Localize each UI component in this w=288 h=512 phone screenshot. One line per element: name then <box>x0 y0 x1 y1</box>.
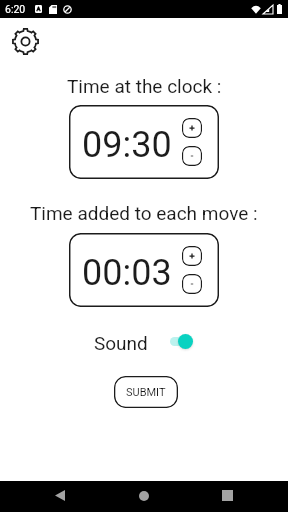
button[interactable]: Decrease <box>182 146 202 166</box>
button[interactable]: Settings <box>8 24 42 58</box>
button[interactable]: Time added to each move <box>69 233 219 307</box>
staticText: Time added to each move : <box>30 202 258 224</box>
staticText: SUBMIT <box>126 386 166 399</box>
button[interactable]: Back <box>44 480 76 511</box>
button[interactable]: Increase <box>182 246 202 266</box>
button[interactable]: Decrease <box>182 274 202 294</box>
button[interactable]: Sound on <box>170 334 193 349</box>
staticText: Time at the clock : <box>67 75 222 97</box>
button[interactable]: SUBMIT <box>114 376 178 408</box>
button[interactable]: Increase <box>182 118 202 138</box>
staticText: 09:30 <box>82 124 172 166</box>
button[interactable]: Home <box>129 481 159 511</box>
button[interactable]: Recent apps <box>211 480 243 511</box>
staticText: Sound <box>94 332 148 354</box>
staticText: 6:20 <box>5 3 26 15</box>
staticText: 00:03 <box>82 252 172 294</box>
button[interactable]: Time at the clock <box>69 105 219 179</box>
